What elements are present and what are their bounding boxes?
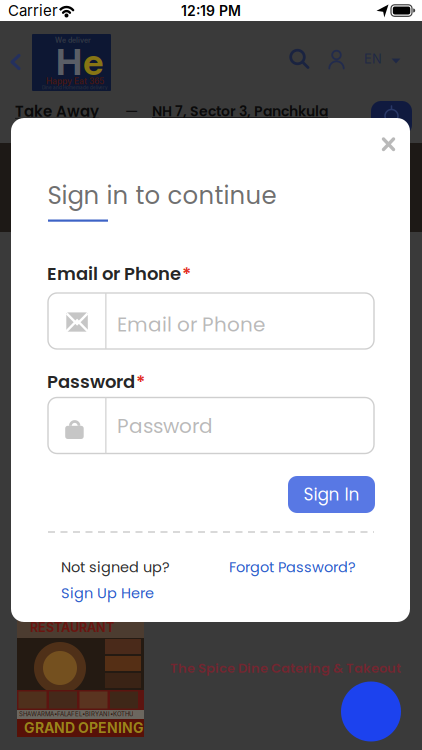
staticText: H: [56, 40, 82, 84]
button[interactable]: Password: [48, 397, 374, 453]
staticText: *: [182, 261, 191, 286]
staticText: GRAND OPENING: [24, 719, 144, 736]
staticText: We deliver: [55, 36, 91, 44]
button[interactable]: Close: [0, 0, 30, 30]
staticText: Happy Eat 365: [46, 76, 104, 86]
staticText: 12:19 PM: [181, 2, 241, 19]
staticText: —: [125, 101, 138, 122]
button[interactable]: Language: [0, 0, 422, 750]
staticText: Dine and Homemade delivery: [42, 85, 108, 90]
button[interactable]: Account: [0, 0, 30, 30]
staticText: Sign Up Here: [61, 583, 154, 603]
button[interactable]: Chat: [341, 681, 401, 741]
staticText: Forgot Password?: [229, 557, 356, 577]
staticText: EN: [364, 51, 382, 67]
button[interactable]: Take Away: [15, 101, 345, 123]
staticText: Take Away: [15, 101, 99, 122]
staticText: Email or Phone: [117, 310, 265, 338]
button[interactable]: Email or Phone: [48, 293, 374, 349]
button[interactable]: Locate: [371, 101, 412, 135]
staticText: SHAWARMA•FALAFEL•BIRYANI•KOTHU: [19, 710, 133, 718]
staticText: Password: [117, 412, 213, 440]
button[interactable]: Home: [32, 34, 111, 91]
button[interactable]: Sign Up Here: [61, 583, 154, 603]
staticText: Not signed up?: [61, 557, 170, 577]
staticText: The Spice Dine Catering & Takeout: [170, 659, 401, 677]
staticText: NH 7, Sector 3, Panchkula: [152, 101, 328, 121]
button[interactable]: Search: [0, 0, 30, 30]
staticText: Email or Phone: [47, 261, 181, 286]
button[interactable]: Forgot Password?: [229, 557, 356, 577]
staticText: Password: [47, 369, 135, 394]
staticText: Sign In: [303, 483, 359, 506]
staticText: RESTAURANT: [30, 620, 114, 635]
staticText: *: [136, 369, 145, 394]
button[interactable]: Back: [0, 0, 30, 80]
staticText: Sign in to continue: [47, 178, 276, 213]
button[interactable]: Sign In: [288, 476, 375, 513]
staticText: e: [83, 40, 104, 84]
staticText: Carrier: [8, 1, 58, 20]
